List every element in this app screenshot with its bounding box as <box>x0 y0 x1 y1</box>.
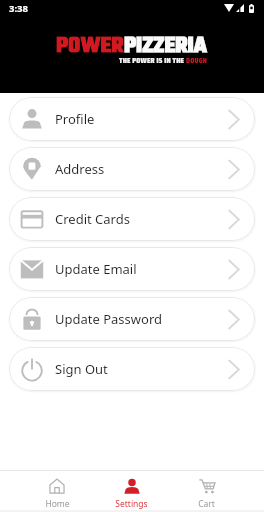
staticText: Settings <box>115 498 148 510</box>
staticText: Cart <box>198 498 215 510</box>
staticText: PIZZERIA <box>124 29 207 63</box>
staticText: Update Email <box>55 260 137 278</box>
staticText: DOUGH <box>186 54 208 67</box>
staticText: Credit Cards <box>55 210 130 228</box>
staticText: 3:38 <box>9 2 28 15</box>
button[interactable]: Address <box>9 147 255 191</box>
staticText: THE POWER IS IN THE <box>119 54 186 67</box>
staticText: Update Password <box>55 310 162 328</box>
button[interactable]: Profile <box>9 97 255 141</box>
button[interactable]: Credit Cards <box>9 197 255 241</box>
staticText: Address <box>55 160 105 178</box>
button[interactable]: Home <box>20 471 94 510</box>
staticText: Home <box>45 498 70 510</box>
staticText: Sign Out <box>55 360 108 378</box>
button[interactable]: Cart <box>169 471 244 510</box>
button[interactable]: Sign Out <box>9 347 255 391</box>
staticText: Profile <box>55 110 95 128</box>
button[interactable]: Update Password <box>9 297 255 341</box>
button[interactable]: Settings <box>94 471 169 510</box>
staticText: POWER <box>56 29 124 63</box>
button[interactable]: Update Email <box>9 247 255 291</box>
